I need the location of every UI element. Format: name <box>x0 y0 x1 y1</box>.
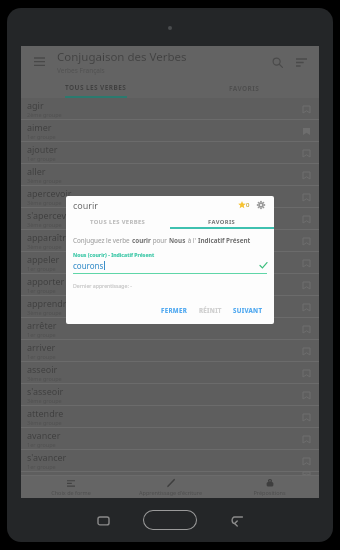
staticText: apparaître <box>27 231 71 243</box>
staticText: 1er groupe <box>27 133 56 140</box>
button[interactable]: Favorites count <box>238 201 250 209</box>
button[interactable]: FAVORIS <box>170 214 274 229</box>
button[interactable]: Open navigation menu <box>29 52 49 72</box>
staticText: avancer <box>27 429 61 441</box>
button[interactable]: Sort <box>291 52 311 72</box>
button[interactable]: appeler <box>21 252 319 274</box>
button[interactable]: avancer <box>21 428 319 450</box>
staticText: apporter <box>27 275 65 287</box>
staticText: 3ème groupe <box>27 419 62 426</box>
button[interactable]: s'asseoir <box>21 384 319 406</box>
staticText: agir <box>27 99 44 111</box>
staticText: 3ème groupe <box>27 309 62 316</box>
staticText: apercevoir <box>27 187 72 199</box>
button[interactable]: TOUS LES VERBES <box>66 214 170 229</box>
button[interactable]: Home <box>143 510 197 530</box>
staticText: FERMER <box>161 306 188 314</box>
button[interactable]: apercevoir <box>21 186 319 208</box>
staticText: courons <box>73 260 104 271</box>
staticText: 3ème groupe <box>27 177 62 184</box>
button[interactable]: arriver <box>21 340 319 362</box>
staticText: Nous (courir) - Indicatif Présent <box>73 251 155 258</box>
staticText: arriver <box>27 341 56 353</box>
staticText: 3ème groupe <box>27 397 62 404</box>
button[interactable]: Favorite appeler <box>299 256 313 270</box>
staticText: 3ème groupe <box>27 243 62 250</box>
staticText: FAVORIS <box>229 84 260 93</box>
staticText: TOUS LES VERBES <box>90 218 146 226</box>
button[interactable]: Back <box>197 505 277 535</box>
button[interactable]: s'avancer <box>21 450 319 472</box>
button[interactable]: Favorite apporter <box>299 278 313 292</box>
staticText: 0 <box>246 201 250 209</box>
button[interactable]: Settings <box>255 199 267 211</box>
button[interactable]: aller <box>21 164 319 186</box>
button[interactable]: ajouter <box>21 142 319 164</box>
staticText: 2ème groupe <box>27 111 62 118</box>
staticText: 3ème groupe <box>27 375 62 382</box>
button[interactable]: Choix de forme <box>21 476 121 498</box>
staticText: aller <box>27 165 46 177</box>
staticText: 1er groupe <box>27 287 56 294</box>
button[interactable]: Favorite aimer <box>299 124 313 138</box>
button[interactable]: Favorite avancer <box>299 432 313 446</box>
button[interactable]: apprendre <box>21 296 319 318</box>
button[interactable]: Favorite arrêter <box>299 322 313 336</box>
button[interactable]: Favorite aller <box>299 168 313 182</box>
staticText: TOUS LES VERBES <box>65 83 127 92</box>
staticText: 1er groupe <box>27 441 56 448</box>
staticText: Choix de forme <box>51 489 91 496</box>
staticText: attendre <box>27 407 64 419</box>
staticText: arrêter <box>27 319 57 331</box>
button[interactable]: Recent apps <box>63 505 143 535</box>
button[interactable]: aimer <box>21 120 319 142</box>
button[interactable]: Favorite apercevoir <box>299 190 313 204</box>
button[interactable]: Favorite apprendre <box>299 300 313 314</box>
button[interactable]: SUIVANT <box>229 303 267 317</box>
button[interactable]: arrêter <box>21 318 319 340</box>
staticText: Prépositions <box>253 489 286 496</box>
button[interactable]: Prépositions <box>220 476 319 498</box>
button[interactable]: avoir <box>21 472 319 476</box>
button[interactable]: apporter <box>21 274 319 296</box>
button[interactable]: Favorite s'apercevoir <box>299 212 313 226</box>
button[interactable]: FERMER <box>157 303 192 317</box>
staticText: pour <box>151 236 169 245</box>
staticText: Dernier apprentissage: - <box>73 282 132 289</box>
button[interactable]: Favorite arriver <box>299 344 313 358</box>
button[interactable]: apparaître <box>21 230 319 252</box>
staticText: 1er groupe <box>27 463 56 470</box>
staticText: FAVORIS <box>208 218 236 226</box>
button[interactable]: Search <box>267 52 287 72</box>
button[interactable]: TOUS LES VERBES <box>21 78 170 98</box>
button[interactable]: RÉINIT <box>195 303 226 317</box>
staticText: RÉINIT <box>199 306 222 314</box>
button[interactable]: Favorite s'asseoir <box>299 388 313 402</box>
button[interactable]: Favorite s'avancer <box>299 454 313 468</box>
staticText: s'apercevoir <box>27 209 78 221</box>
staticText: apprendre <box>27 297 72 309</box>
staticText: courir <box>132 236 151 245</box>
button[interactable]: Favorite asseoir <box>299 366 313 380</box>
button[interactable]: Favorite agir <box>299 102 313 116</box>
button[interactable]: Favorite apparaître <box>299 234 313 248</box>
button[interactable]: s'apercevoir <box>21 208 319 230</box>
button[interactable]: Favorite avoir <box>299 472 313 475</box>
staticText: s'avancer <box>27 451 67 463</box>
staticText: SUIVANT <box>233 306 263 314</box>
button[interactable]: Favorite ajouter <box>299 146 313 160</box>
staticText: aimer <box>27 121 52 133</box>
staticText: Apprentissage d'écriture <box>139 489 202 496</box>
staticText: courir <box>73 199 238 211</box>
staticText: à l' <box>186 236 198 245</box>
button[interactable]: Favorite attendre <box>299 410 313 424</box>
button[interactable]: asseoir <box>21 362 319 384</box>
staticText: Conjugaison des Verbes <box>57 49 187 65</box>
staticText: Verbes Français <box>57 66 105 75</box>
button[interactable]: attendre <box>21 406 319 428</box>
button[interactable]: agir <box>21 98 319 120</box>
button[interactable]: Apprentissage d'écriture <box>121 476 220 498</box>
staticText: appeler <box>27 253 60 265</box>
